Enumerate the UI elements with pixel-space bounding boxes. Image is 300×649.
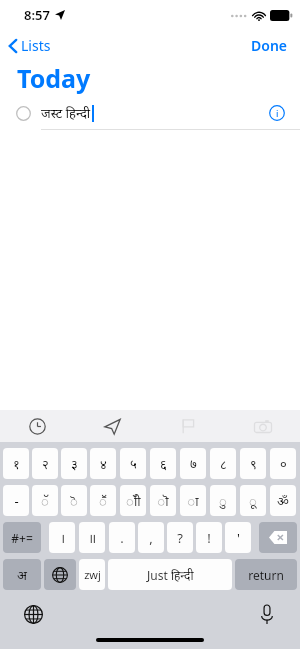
staticText: ? <box>177 529 183 547</box>
button[interactable]: Just हिन्दी <box>108 559 232 590</box>
staticText: ु <box>219 492 227 510</box>
button[interactable]: Send <box>75 410 150 442</box>
staticText: । <box>60 529 65 547</box>
staticText: #+= <box>11 530 33 546</box>
button[interactable]: ९ <box>240 448 266 479</box>
staticText: जस्ट हिन्दी <box>41 104 91 122</box>
button[interactable]: ४ <box>90 448 116 479</box>
staticText: १ <box>13 455 20 473</box>
button[interactable]: . <box>109 522 135 553</box>
staticText: ॥ <box>88 529 96 547</box>
staticText: ' <box>237 529 240 547</box>
staticText: - <box>14 492 19 510</box>
button[interactable]: ॆ <box>61 485 87 516</box>
staticText: ॐ <box>277 492 289 510</box>
staticText: ८ <box>220 455 227 473</box>
button[interactable]: - <box>3 485 29 516</box>
staticText: 8:57 <box>24 6 50 24</box>
button[interactable]: Lists <box>8 36 51 55</box>
button[interactable]: Recents <box>0 410 75 442</box>
button[interactable]: ॐ <box>270 485 296 516</box>
button[interactable]: ३ <box>61 448 87 479</box>
button[interactable]: ु <box>210 485 236 516</box>
staticText: ू <box>249 492 257 510</box>
staticText: ३ <box>71 455 78 473</box>
button[interactable]: Details <box>267 103 287 123</box>
button[interactable]: Delete <box>259 522 297 553</box>
button[interactable]: १ <box>3 448 29 479</box>
button[interactable]: Change keyboard <box>21 602 45 626</box>
button[interactable]: ६ <box>150 448 176 479</box>
staticText: . <box>120 529 124 547</box>
button[interactable]: ू <box>240 485 266 516</box>
staticText: ४ <box>100 455 107 473</box>
button[interactable]: , <box>138 522 164 553</box>
staticText: ॉी <box>126 492 141 510</box>
staticText: ६ <box>160 455 167 473</box>
button[interactable]: Camera <box>225 410 300 442</box>
button[interactable]: ७ <box>180 448 206 479</box>
staticText: अ <box>17 566 27 584</box>
staticText: Just हिन्दी <box>147 567 194 583</box>
staticText: ॊ <box>157 492 169 510</box>
button[interactable]: ॊ <box>150 485 176 516</box>
button[interactable]: ॥ <box>79 522 105 553</box>
button[interactable]: ५ <box>120 448 146 479</box>
button[interactable]: Switch keyboard <box>44 559 76 590</box>
button[interactable]: अ <box>3 559 41 590</box>
button[interactable]: २ <box>32 448 58 479</box>
button[interactable]: return <box>235 559 297 590</box>
staticText: ! <box>207 529 211 547</box>
staticText: ॕ <box>99 492 107 510</box>
button[interactable]: ' <box>225 522 251 553</box>
staticText: २ <box>42 455 49 473</box>
button[interactable]: zwj <box>79 559 105 590</box>
button[interactable]: ! <box>196 522 222 553</box>
staticText: zwj <box>84 567 101 582</box>
button[interactable]: Done <box>251 36 288 55</box>
staticText: ा <box>187 492 199 510</box>
staticText: Today <box>17 61 91 95</box>
staticText: i <box>276 107 279 119</box>
button[interactable]: ? <box>167 522 193 553</box>
button[interactable]: ८ <box>210 448 236 479</box>
button[interactable]: ० <box>270 448 296 479</box>
button[interactable]: ॅ <box>32 485 58 516</box>
staticText: ॆ <box>70 492 78 510</box>
button[interactable]: ॉी <box>120 485 146 516</box>
button[interactable]: #+= <box>3 522 41 553</box>
button[interactable]: Dictation <box>255 602 279 626</box>
staticText: ७ <box>190 455 197 473</box>
button[interactable]: ॕ <box>90 485 116 516</box>
staticText: ५ <box>130 455 137 473</box>
staticText: , <box>149 529 153 547</box>
staticText: ० <box>280 455 287 473</box>
staticText: ९ <box>250 455 257 473</box>
staticText: ॅ <box>41 492 49 510</box>
staticText: return <box>248 567 284 583</box>
button[interactable]: । <box>49 522 75 553</box>
staticText: Done <box>251 36 288 55</box>
button[interactable]: ा <box>180 485 206 516</box>
button[interactable]: जस्ट हिन्दी <box>0 96 300 130</box>
staticText: Lists <box>21 36 51 55</box>
